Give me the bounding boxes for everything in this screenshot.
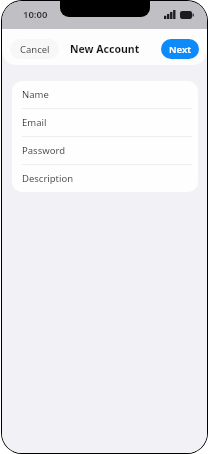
button[interactable]: Password <box>12 137 198 165</box>
button[interactable]: Email <box>12 109 198 137</box>
staticText: New Account <box>70 42 140 56</box>
staticText: Email <box>22 116 47 129</box>
button[interactable]: Name <box>12 81 198 109</box>
button[interactable]: Cancel <box>10 39 59 59</box>
staticText: Description <box>22 172 74 185</box>
button[interactable]: Description <box>12 165 198 192</box>
staticText: Next <box>169 43 192 56</box>
staticText: 10:00 <box>23 8 48 21</box>
staticText: Name <box>22 88 49 101</box>
staticText: Cancel <box>20 43 50 56</box>
staticText: Password <box>22 144 65 157</box>
button[interactable]: Next <box>161 39 199 59</box>
